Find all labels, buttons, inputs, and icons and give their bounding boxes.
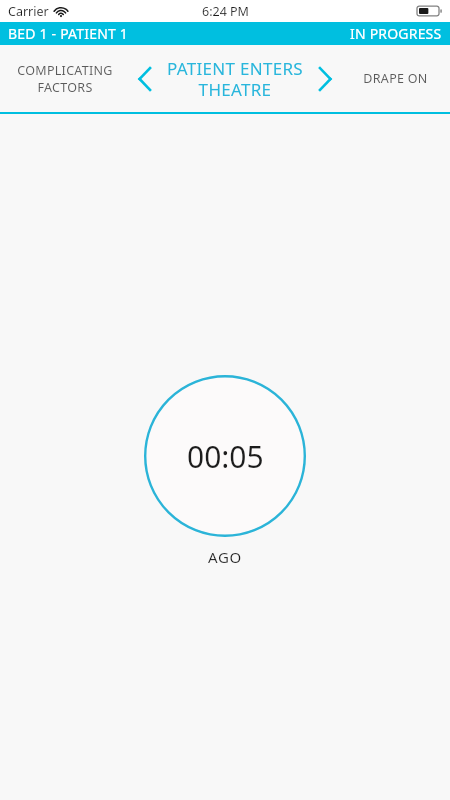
button[interactable]: COMPLICATING FACTORS [0, 45, 130, 112]
staticText: PATIENT ENTERS THEATRE [167, 57, 303, 101]
button[interactable]: PATIENT ENTERS THEATRE [160, 45, 310, 112]
staticText: 6:24 PM [202, 3, 249, 20]
button[interactable]: Previous step [130, 45, 160, 112]
staticText: AGO [208, 547, 242, 567]
button[interactable]: Next step [310, 45, 340, 112]
staticText: Carrier [8, 3, 49, 20]
staticText: COMPLICATING FACTORS [17, 62, 113, 95]
staticText: DRAPE ON [363, 70, 428, 87]
button[interactable]: DRAPE ON [340, 45, 450, 112]
staticText: 00:05 [187, 436, 264, 477]
staticText: IN PROGRESS [350, 24, 442, 43]
button[interactable]: 00:05 [144, 375, 306, 537]
staticText: BED 1 - PATIENT 1 [8, 24, 129, 43]
